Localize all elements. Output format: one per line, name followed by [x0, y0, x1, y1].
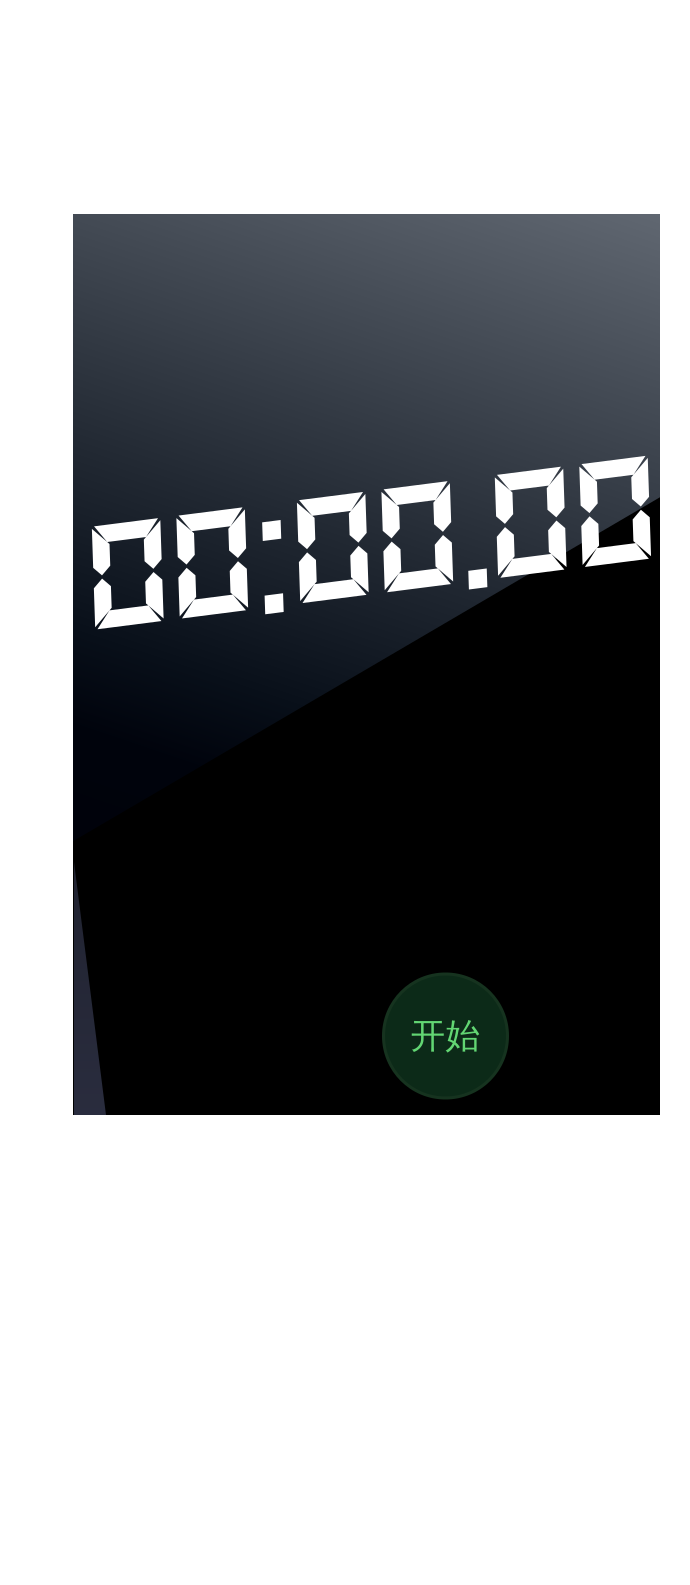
staticText: 开始: [410, 1015, 480, 1057]
button[interactable]: 开始: [382, 972, 509, 1099]
